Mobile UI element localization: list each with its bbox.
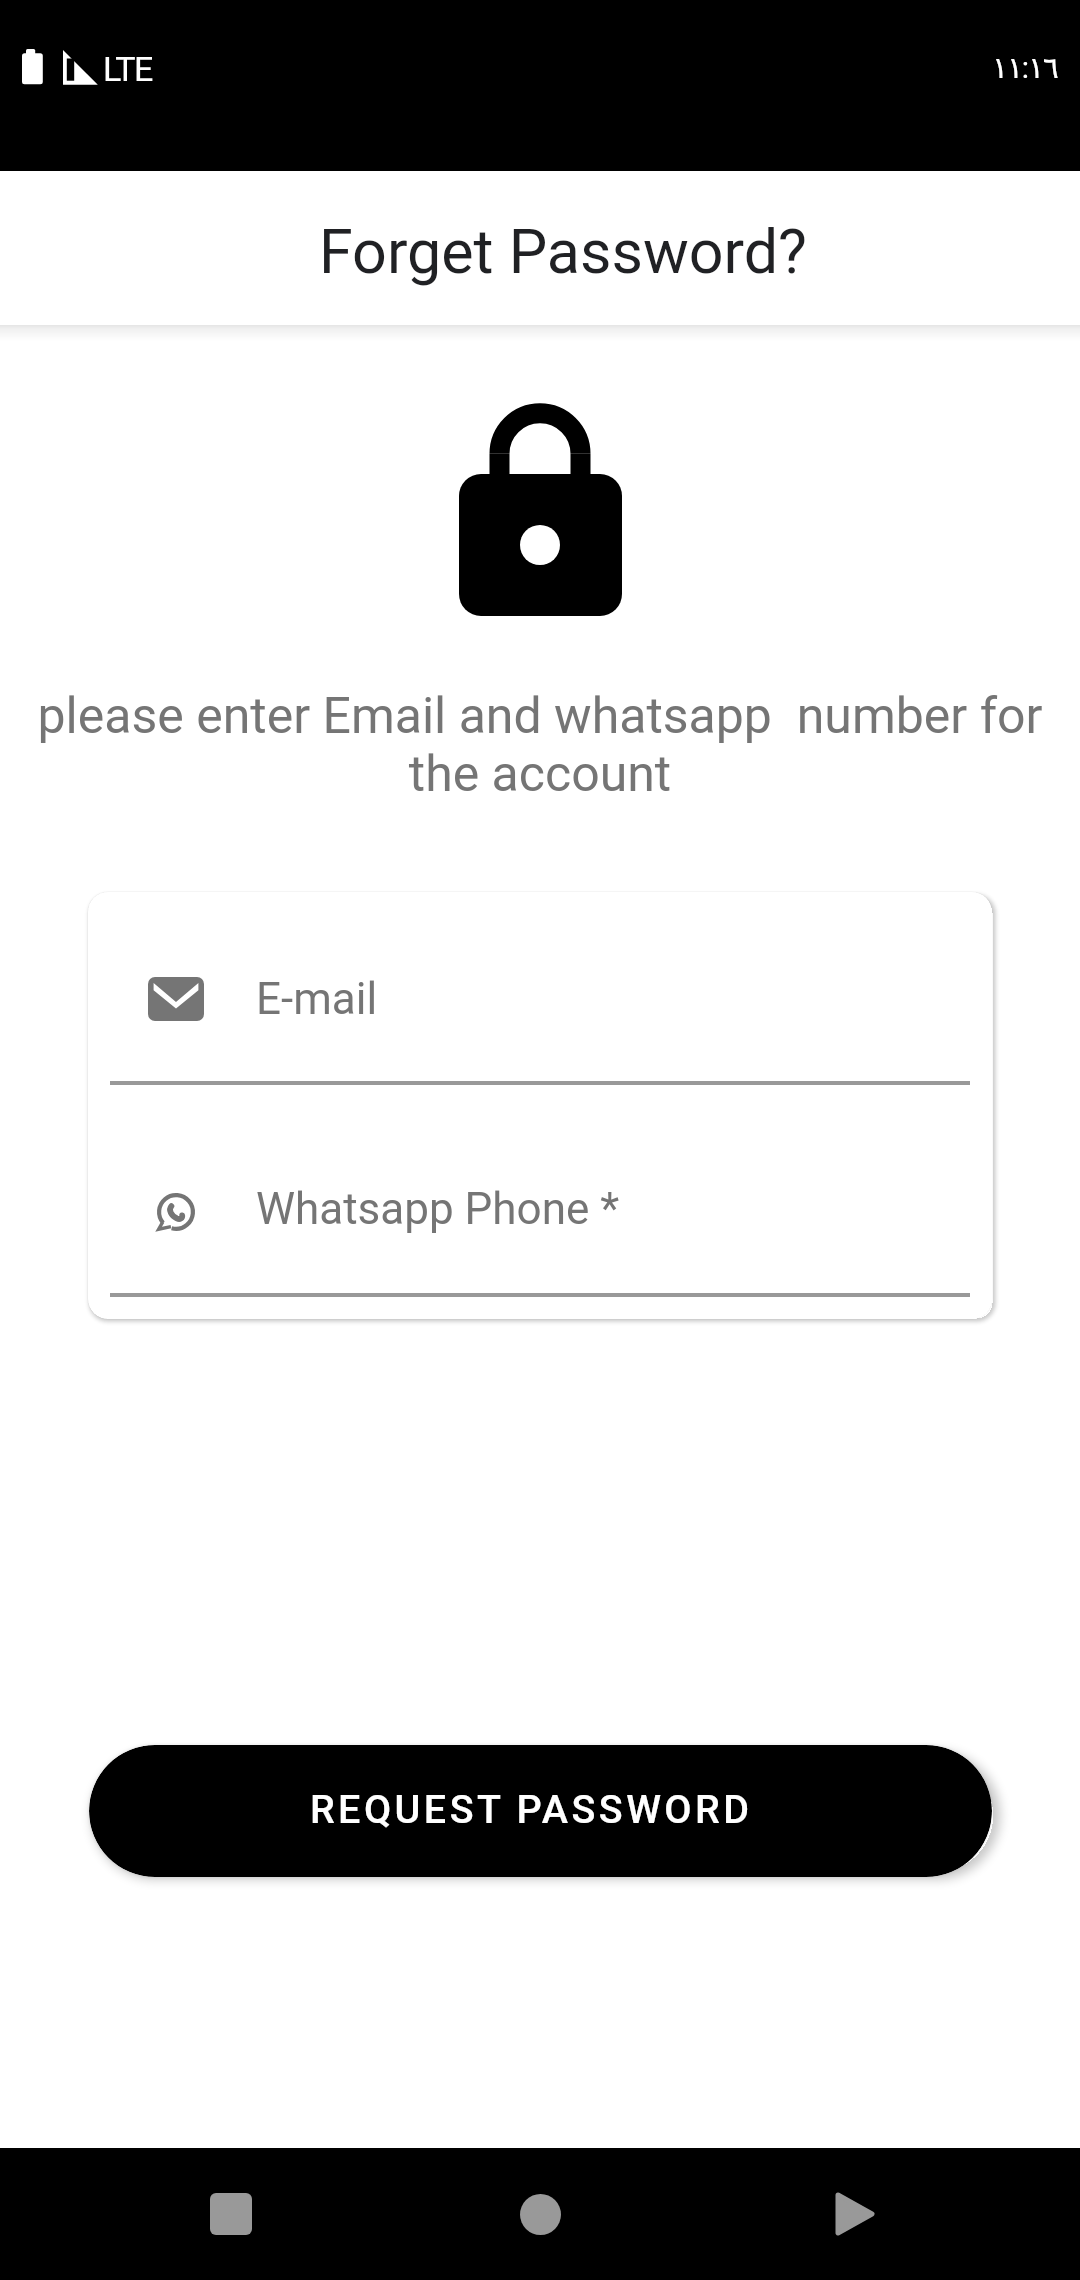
staticText: ١١:١٦ xyxy=(992,50,1058,85)
button[interactable]: REQUEST PASSWORD xyxy=(89,1745,992,1877)
staticText: please enter Email and whatsapp number f… xyxy=(20,687,1060,803)
staticText: REQUEST PASSWORD xyxy=(310,1786,753,1832)
button[interactable]: E-mail xyxy=(88,892,992,1092)
button[interactable]: Whatsapp Phone * xyxy=(88,1092,992,1319)
button[interactable]: Back xyxy=(789,2148,921,2280)
staticText: Whatsapp Phone * xyxy=(256,1183,620,1235)
staticText: Forget Password? xyxy=(319,216,807,287)
staticText: E-mail xyxy=(256,973,378,1025)
staticText: LTE xyxy=(103,49,152,89)
button[interactable]: Recent apps xyxy=(165,2148,297,2280)
button[interactable]: Home xyxy=(474,2148,606,2280)
